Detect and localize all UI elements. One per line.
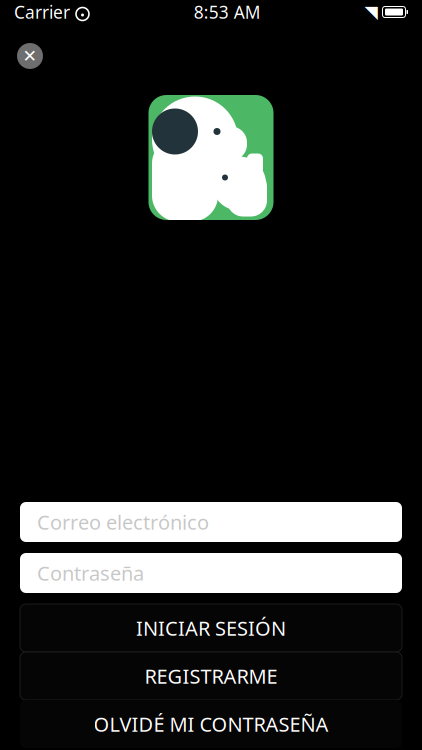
staticText: Contraseña [37,560,144,586]
button[interactable]: INICIAR SESIÓN [20,604,402,652]
staticText [377,0,382,23]
button[interactable]: Correo electrónico [20,502,402,542]
button[interactable]: REGISTRARME [20,652,402,700]
button[interactable]: Close [13,39,47,73]
staticText [70,0,75,23]
staticText: ✕ [22,46,37,66]
staticText: INICIAR SESIÓN [136,615,286,641]
staticText: Carrier [14,0,70,23]
staticText: ◥ [364,2,377,22]
staticText: Correo electrónico [37,509,209,535]
staticText: 8:53 AM [194,0,261,23]
staticText: OLVIDÉ MI CONTRASEÑA [93,711,328,737]
staticText: REGISTRARME [144,663,277,689]
button[interactable]: OLVIDÉ MI CONTRASEÑA [20,700,402,748]
button[interactable]: Contraseña [20,553,402,593]
